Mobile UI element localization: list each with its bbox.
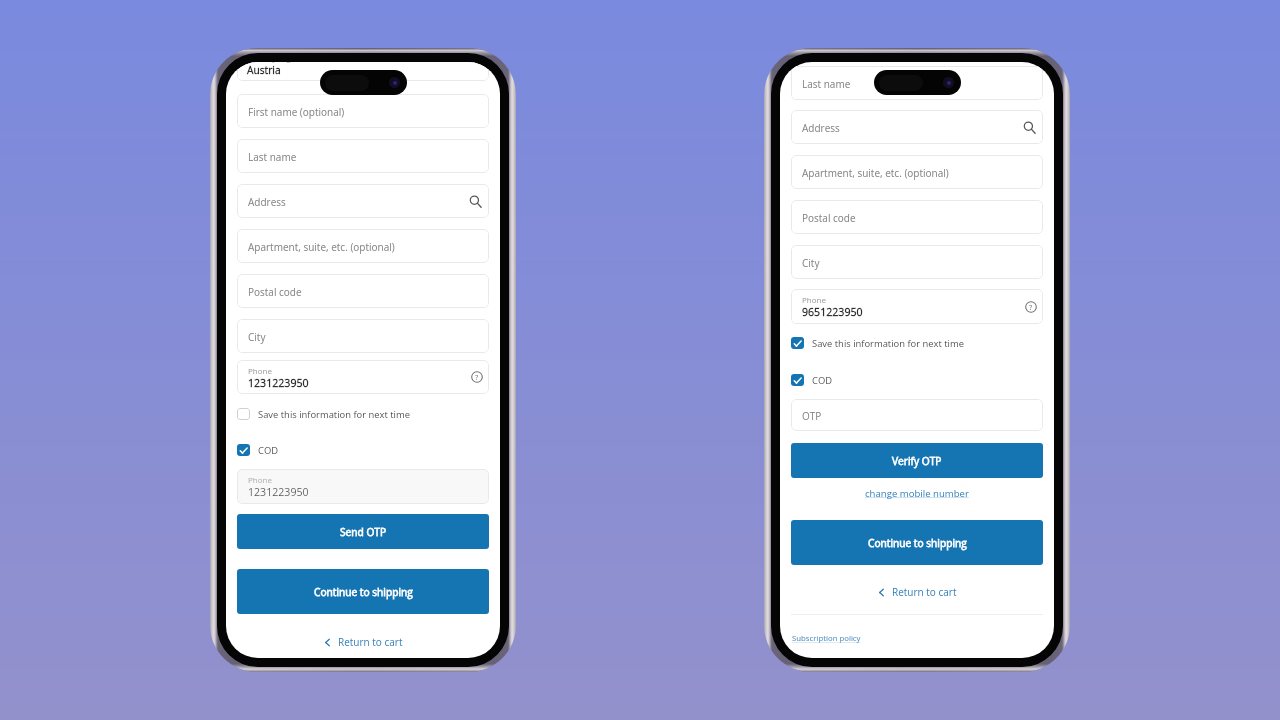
staticText: Austria [247,63,281,77]
button[interactable]: First name (optional) [237,94,489,128]
staticText: Save this information for next time [812,337,964,349]
staticText: First name (optional) [248,105,345,119]
staticText: Country/region [247,62,303,64]
staticText: 1231223950 [248,485,309,499]
button[interactable]: Send OTP [237,514,489,549]
button[interactable]: Save this information for next time [791,337,1043,349]
staticText: Postal code [802,211,856,225]
button[interactable]: Phone [237,360,489,394]
button[interactable]: Continue to shipping [237,569,489,614]
staticText: Apartment, suite, etc. (optional) [802,166,949,180]
staticText: 1231223950 [248,376,309,390]
button[interactable]: Return to cart [317,632,409,652]
staticText: OTP [802,409,822,423]
button[interactable]: City [237,319,489,353]
staticText: Verify OTP [892,454,942,468]
button[interactable]: Verify OTP [791,443,1043,478]
button[interactable]: Postal code [791,200,1043,234]
staticText: City [248,330,266,344]
button[interactable]: Address [791,110,1043,144]
button[interactable]: Last name [791,66,1043,100]
button[interactable]: Phone [791,289,1043,324]
button[interactable]: Search address [468,194,482,208]
button[interactable]: Save this information for next time [237,408,489,420]
staticText: Last name [802,77,851,91]
staticText: Send OTP [340,525,387,539]
button[interactable]: Phone [237,469,489,504]
staticText: Apartment, suite, etc. (optional) [248,240,395,254]
staticText: ? [475,372,479,382]
staticText: Continue to shipping [868,536,967,550]
button[interactable]: COD [237,444,489,456]
staticText: Address [248,195,286,209]
button[interactable]: Apartment, suite, etc. (optional) [237,229,489,263]
button[interactable]: Phone help [1025,301,1037,313]
staticText: COD [812,374,833,386]
button[interactable]: City [791,245,1043,279]
staticText: Phone [248,365,272,376]
staticText: Phone [248,474,272,485]
button[interactable]: Continue to shipping [791,520,1043,565]
button[interactable]: OTP [791,399,1043,431]
button[interactable]: Phone help [471,371,483,383]
button[interactable]: Apartment, suite, etc. (optional) [791,155,1043,189]
button[interactable]: Search address [1022,120,1036,134]
staticText: Continue to shipping [314,585,413,599]
button[interactable]: Address [237,184,489,218]
staticText: Save this information for next time [258,408,410,420]
staticText: Return to cart [338,635,403,649]
button[interactable]: Postal code [237,274,489,308]
staticText: Postal code [248,285,302,299]
button[interactable]: Subscription policy [791,633,861,644]
staticText: Last name [248,150,297,164]
button[interactable]: COD [791,374,1043,386]
button[interactable]: change mobile number [861,485,973,502]
staticText: Return to cart [892,585,957,599]
staticText: Address [802,121,840,135]
staticText: 9651223950 [802,305,863,319]
staticText: COD [258,444,279,456]
button[interactable]: Return to cart [871,582,963,602]
button[interactable]: Last name [237,139,489,173]
button[interactable]: Country/region [237,62,489,81]
staticText: ? [1029,302,1033,312]
staticText: City [802,256,820,270]
staticText: Phone [802,294,826,305]
